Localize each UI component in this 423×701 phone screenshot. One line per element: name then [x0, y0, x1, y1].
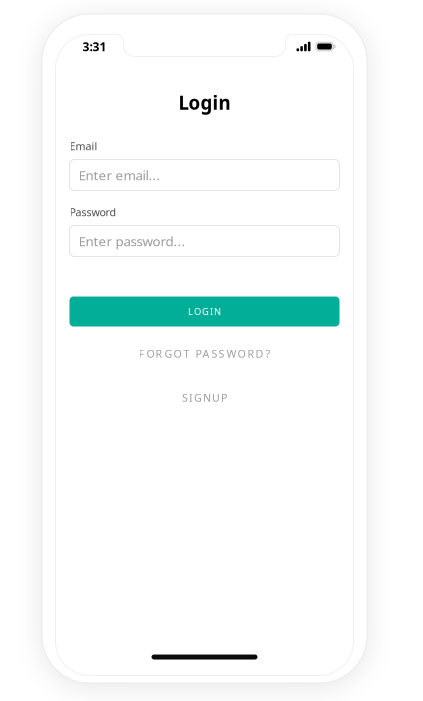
button[interactable]: S I G N U P — [55, 386, 353, 408]
button[interactable]: L O G I N — [69, 296, 339, 326]
staticText: Password — [69, 205, 116, 219]
button[interactable]: F O R G O T P A S S W O R D ? — [55, 342, 353, 364]
staticText: F O R G O T P A S S W O R D ? — [138, 346, 270, 361]
staticText: Enter password... — [78, 232, 185, 250]
button[interactable]: Enter email... — [69, 159, 339, 190]
staticText: L O G I N — [188, 305, 221, 318]
staticText: 3:31 — [82, 38, 106, 54]
staticText: Login — [178, 90, 230, 115]
staticText: S I G N U P — [182, 390, 227, 405]
staticText: Email — [69, 139, 97, 153]
staticText: Enter email... — [78, 166, 160, 184]
button[interactable]: Enter password... — [69, 225, 339, 256]
